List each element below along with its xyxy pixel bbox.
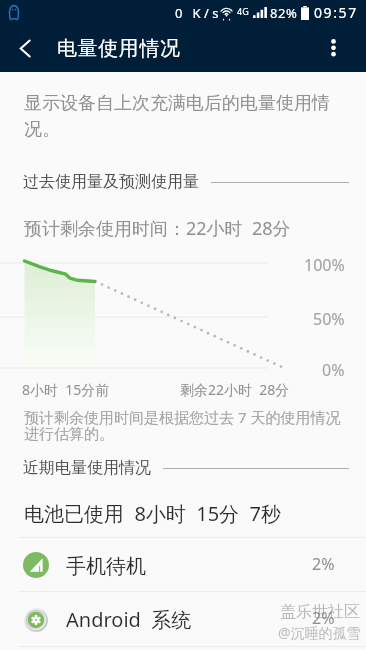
staticText: 82%	[270, 4, 298, 22]
staticText: 2%	[312, 607, 335, 629]
staticText: 显示设备自上次充满电后的电量使用情况。	[24, 92, 342, 140]
staticText: 盖乐世社区	[280, 602, 360, 622]
staticText: 100%	[304, 254, 345, 276]
staticText: 0%	[322, 359, 345, 381]
staticText: @沉睡的孤雪	[278, 623, 361, 642]
staticText: 0 K/s	[175, 4, 222, 22]
staticText: 预计剩余使用时间：22小时 28分	[24, 216, 291, 241]
staticText: 09:57	[314, 3, 358, 22]
staticText: 剩余22小时 28分	[180, 380, 290, 399]
staticText: 电量使用情况	[57, 36, 181, 61]
staticText: 预计剩余使用时间是根据您过去 7 天的使用情况进行估算的。	[24, 407, 346, 444]
staticText: 4G	[237, 5, 249, 17]
staticText: 手机待机	[66, 554, 146, 579]
staticText: 电池已使用 8小时 15分 7秒	[24, 500, 281, 527]
button[interactable]: Back	[0, 25, 50, 72]
staticText: 近期电量使用情况	[23, 458, 151, 478]
button[interactable]: Android 系统	[0, 592, 366, 646]
staticText: 过去使用量及预测使用量	[23, 172, 199, 192]
staticText: 50%	[313, 308, 345, 330]
staticText: 8小时 15分前	[22, 380, 110, 399]
staticText: Android 系统	[66, 606, 192, 633]
button[interactable]: 手机待机	[0, 538, 366, 591]
staticText: 2%	[312, 553, 335, 575]
button[interactable]: More options	[322, 25, 366, 72]
